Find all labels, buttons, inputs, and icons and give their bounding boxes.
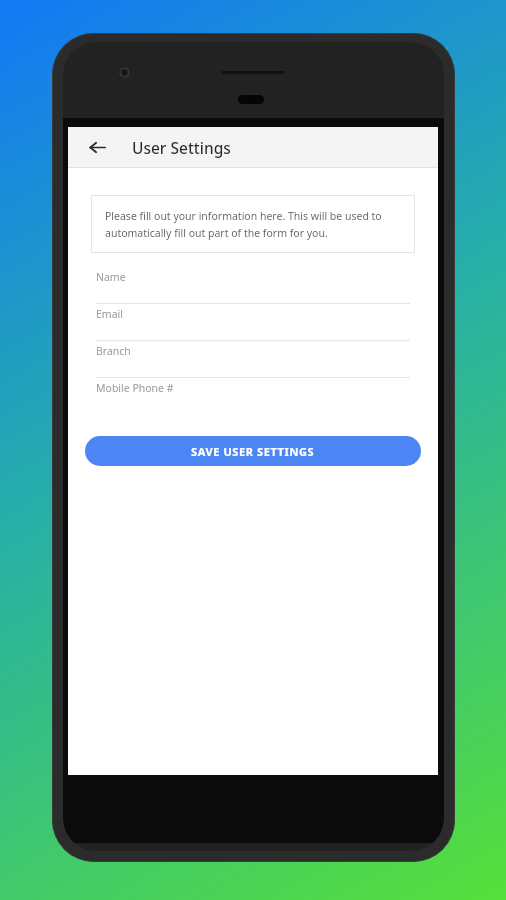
button[interactable]: Name — [96, 267, 410, 303]
button[interactable]: Branch — [96, 341, 410, 377]
button[interactable]: SAVE USER SETTINGS — [85, 436, 421, 466]
staticText: Email — [96, 307, 123, 321]
button[interactable]: Email — [96, 304, 410, 340]
button[interactable]: Mobile Phone # — [96, 378, 410, 414]
staticText: User Settings — [132, 137, 231, 158]
staticText: Mobile Phone # — [96, 381, 174, 395]
staticText: Name — [96, 270, 126, 284]
staticText: Branch — [96, 344, 131, 358]
button[interactable]: Back — [85, 135, 109, 159]
staticText: Please fill out your information here. T… — [105, 209, 401, 240]
staticText: SAVE USER SETTINGS — [191, 444, 315, 459]
